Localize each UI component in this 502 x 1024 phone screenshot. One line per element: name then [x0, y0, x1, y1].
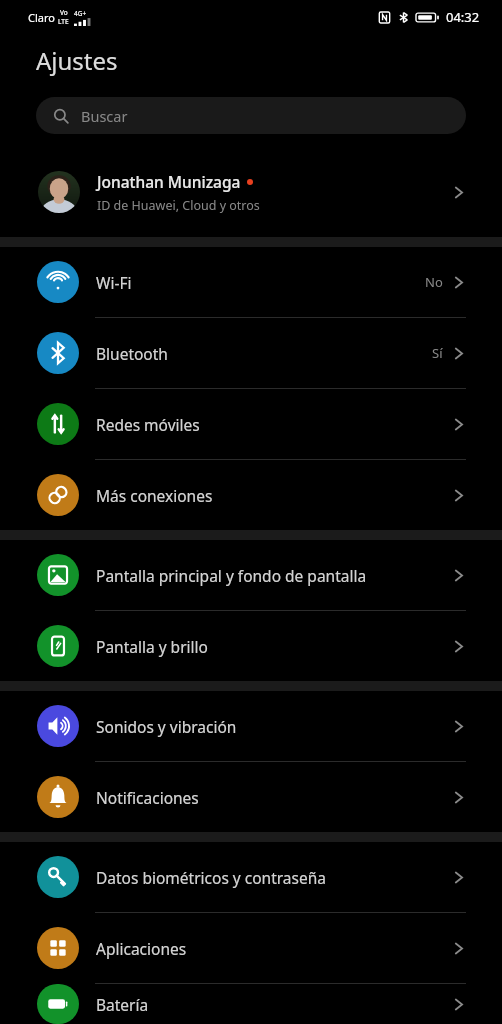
staticText: ID de Huawei, Cloud y otros: [97, 197, 260, 214]
staticText: Aplicaciones: [96, 938, 451, 959]
button[interactable]: Pantalla principal y fondo de pantalla: [0, 540, 502, 610]
staticText: 04:32: [446, 8, 480, 26]
button[interactable]: Bluetooth: [0, 318, 502, 388]
staticText: Claro: [28, 10, 55, 25]
button[interactable]: Batería: [0, 984, 502, 1024]
button[interactable]: Redes móviles: [0, 389, 502, 459]
button[interactable]: Buscar: [36, 97, 466, 134]
staticText: Notificaciones: [96, 787, 451, 808]
button[interactable]: Sonidos y vibración: [0, 691, 502, 761]
staticText: 4G+: [74, 9, 87, 18]
staticText: Bluetooth: [96, 343, 432, 364]
button[interactable]: Wi-Fi: [0, 247, 502, 317]
staticText: Jonathan Munizaga: [97, 171, 241, 192]
button[interactable]: Aplicaciones: [0, 913, 502, 983]
staticText: Batería: [96, 994, 451, 1015]
staticText: Ajustes: [36, 44, 118, 77]
button[interactable]: Jonathan Munizaga: [0, 163, 502, 221]
button[interactable]: Datos biométricos y contraseña: [0, 842, 502, 912]
staticText: Wi-Fi: [96, 272, 425, 293]
button[interactable]: Más conexiones: [0, 460, 502, 530]
staticText: Redes móviles: [96, 414, 451, 435]
staticText: LTE: [58, 17, 69, 26]
staticText: Vo: [60, 8, 68, 17]
staticText: Sí: [432, 344, 443, 362]
staticText: Pantalla y brillo: [96, 636, 451, 657]
staticText: No: [425, 273, 443, 291]
button[interactable]: Notificaciones: [0, 762, 502, 832]
staticText: Pantalla principal y fondo de pantalla: [96, 565, 451, 586]
staticText: Sonidos y vibración: [96, 716, 451, 737]
staticText: Buscar: [81, 106, 128, 126]
staticText: Más conexiones: [96, 485, 451, 506]
button[interactable]: Pantalla y brillo: [0, 611, 502, 681]
staticText: Datos biométricos y contraseña: [96, 867, 451, 888]
